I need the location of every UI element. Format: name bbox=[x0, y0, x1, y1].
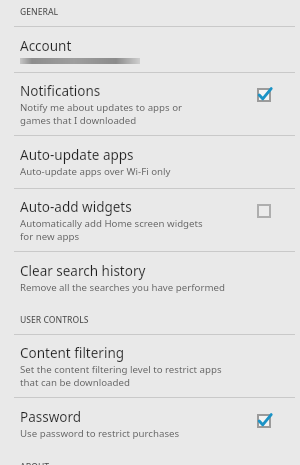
staticText: Content filtering bbox=[20, 344, 125, 362]
staticText: Use password to restrict purchases bbox=[20, 427, 180, 440]
staticText: Auto-update apps bbox=[20, 146, 134, 164]
button[interactable]: Auto-update apps bbox=[0, 136, 300, 188]
button[interactable]: Account bbox=[0, 27, 300, 72]
staticText: Notify me about updates to apps or games… bbox=[20, 101, 183, 126]
staticText: USER CONTROLS bbox=[20, 314, 89, 326]
staticText: Remove all the searches you have perform… bbox=[20, 281, 225, 294]
staticText: Clear search history bbox=[20, 262, 146, 280]
staticText: Automatically add Home screen widgets fo… bbox=[20, 217, 203, 242]
button[interactable]: Password bbox=[0, 398, 300, 450]
button[interactable]: Content filtering bbox=[0, 335, 300, 397]
staticText: Auto-update apps over Wi-Fi only bbox=[20, 165, 171, 178]
button[interactable]: Notifications toggle bbox=[254, 85, 274, 105]
button[interactable]: Password toggle bbox=[254, 411, 274, 431]
button[interactable]: Auto-add widgets toggle bbox=[254, 201, 274, 221]
staticText: Set the content filtering level to restr… bbox=[20, 363, 222, 388]
staticText: GENERAL bbox=[20, 6, 59, 18]
staticText: Auto-add widgets bbox=[20, 198, 132, 216]
staticText: ABOUT bbox=[20, 461, 50, 465]
button[interactable]: Clear search history bbox=[0, 252, 300, 305]
staticText: Notifications bbox=[20, 82, 101, 100]
button[interactable]: Notifications bbox=[0, 73, 300, 135]
staticText: Password bbox=[20, 408, 82, 426]
button[interactable]: Auto-add widgets bbox=[0, 189, 300, 251]
staticText: Account bbox=[20, 37, 72, 55]
